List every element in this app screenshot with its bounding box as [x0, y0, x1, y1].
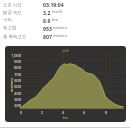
button[interactable]: 총 획득고도 [0, 32, 130, 40]
staticText: 600 [14, 78, 21, 83]
staticText: km/h [52, 9, 63, 15]
staticText: 4 [62, 110, 65, 115]
staticText: 300 [14, 97, 21, 102]
staticText: 평균 속도 [3, 9, 22, 15]
staticText: 2 [41, 110, 44, 115]
staticText: 200 [14, 103, 21, 108]
staticText: km [63, 115, 68, 120]
staticText: 소요 시간 [3, 1, 22, 7]
button[interactable]: 평균 속도 [0, 8, 130, 16]
staticText: 900 [14, 59, 21, 64]
staticText: 700 [14, 72, 21, 77]
staticText: meters [8, 78, 14, 92]
staticText: 500 [14, 84, 21, 89]
staticText: 800 [14, 65, 21, 70]
staticText: 8 [105, 110, 108, 115]
staticText: meters [53, 33, 67, 39]
staticText: 총 획득고도 [3, 33, 27, 39]
staticText: 거리 [3, 17, 12, 23]
staticText: 953 [43, 25, 52, 32]
staticText: 0 [20, 110, 23, 115]
staticText: km [52, 17, 59, 23]
staticText: 400 [14, 91, 21, 96]
staticText: meters [53, 25, 67, 31]
staticText: 1,000 [11, 53, 21, 58]
staticText: 8.9 [43, 17, 51, 24]
staticText: 3.2 [43, 9, 51, 16]
staticText: 03:19:04 [43, 1, 64, 8]
staticText: 고도 [62, 49, 70, 54]
button[interactable]: 최고점 [0, 24, 130, 32]
staticText: 6 [83, 110, 86, 115]
button[interactable]: 소요 시간 [0, 0, 130, 8]
staticText: 807 [43, 33, 52, 40]
button[interactable]: 거리 [0, 16, 130, 24]
staticText: 최고점 [3, 25, 17, 31]
